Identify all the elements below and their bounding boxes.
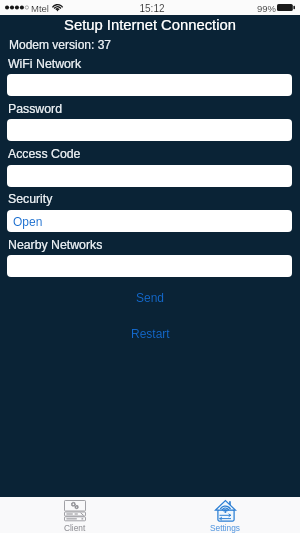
staticText: Mtel (31, 3, 49, 14)
staticText: 15:12 (2, 3, 300, 14)
staticText: Restart (131, 327, 170, 340)
staticText: Client (64, 523, 86, 532)
button[interactable]: Restart (0, 322, 300, 344)
staticText: Setup Internet Connection (0, 17, 300, 34)
staticText: Security (8, 192, 53, 206)
button[interactable]: Send (0, 286, 300, 308)
staticText: WiFi Network (8, 57, 82, 71)
staticText: Open (13, 215, 43, 228)
staticText: 99% (257, 3, 277, 14)
staticText: Settings (210, 523, 240, 532)
button[interactable]: Security (7, 210, 292, 232)
button[interactable]: Nearby Networks (7, 255, 292, 277)
staticText: Send (136, 291, 165, 304)
staticText: Nearby Networks (8, 238, 103, 252)
button[interactable]: Settings (150, 497, 300, 533)
staticText: Modem version: 37 (9, 38, 112, 51)
button[interactable]: Client (0, 497, 150, 533)
button[interactable]: Password (7, 119, 292, 141)
staticText: Access Code (8, 147, 81, 161)
staticText: Password (8, 102, 62, 116)
button[interactable]: Access Code (7, 165, 292, 187)
button[interactable]: WiFi Network (7, 74, 292, 96)
